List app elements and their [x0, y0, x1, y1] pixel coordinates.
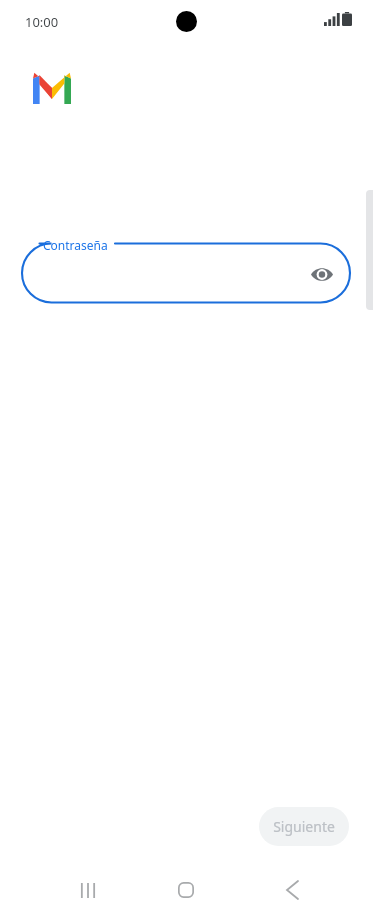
- button[interactable]: Siguiente: [259, 807, 349, 846]
- button[interactable]: Recientes: [64, 866, 112, 914]
- button[interactable]: Atrás: [268, 866, 316, 914]
- button[interactable]: Inicio: [162, 866, 210, 914]
- button[interactable]: Contraseña: [22, 237, 350, 309]
- button[interactable]: Mostrar contraseña: [304, 256, 340, 292]
- staticText: 10:00: [25, 13, 59, 31]
- staticText: Contraseña: [43, 237, 108, 253]
- staticText: Siguiente: [273, 817, 335, 836]
